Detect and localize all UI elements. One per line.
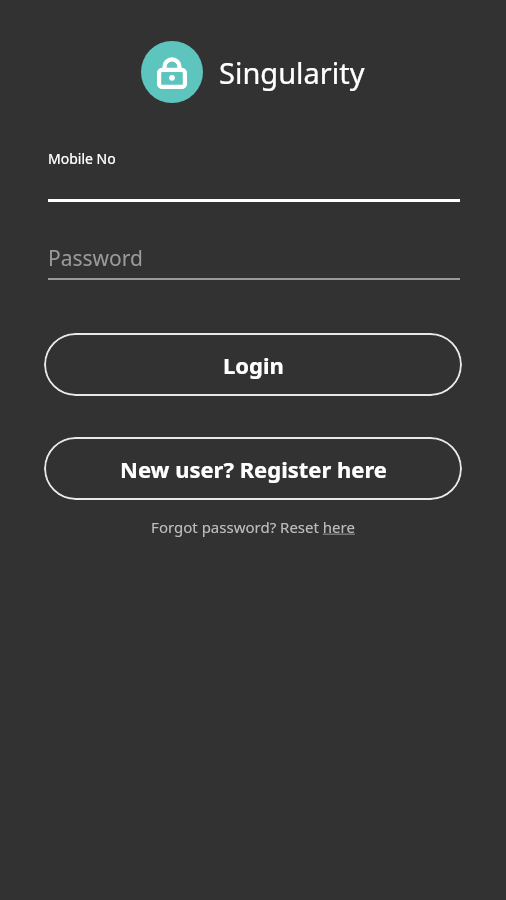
staticText: Forgot password? Reset here — [151, 517, 355, 537]
button[interactable]: Forgot password? Reset here — [0, 517, 506, 537]
staticText: Password — [48, 244, 143, 273]
button[interactable]: New user? Register here — [44, 437, 462, 500]
button[interactable]: Login — [44, 333, 462, 396]
staticText: Login — [223, 350, 284, 380]
button[interactable]: Mobile No — [48, 149, 460, 202]
staticText: Mobile No — [48, 149, 116, 168]
button[interactable]: Password — [48, 244, 460, 280]
other: App logo — [141, 41, 203, 103]
staticText: New user? Register here — [120, 454, 387, 484]
staticText: Singularity — [219, 53, 365, 92]
